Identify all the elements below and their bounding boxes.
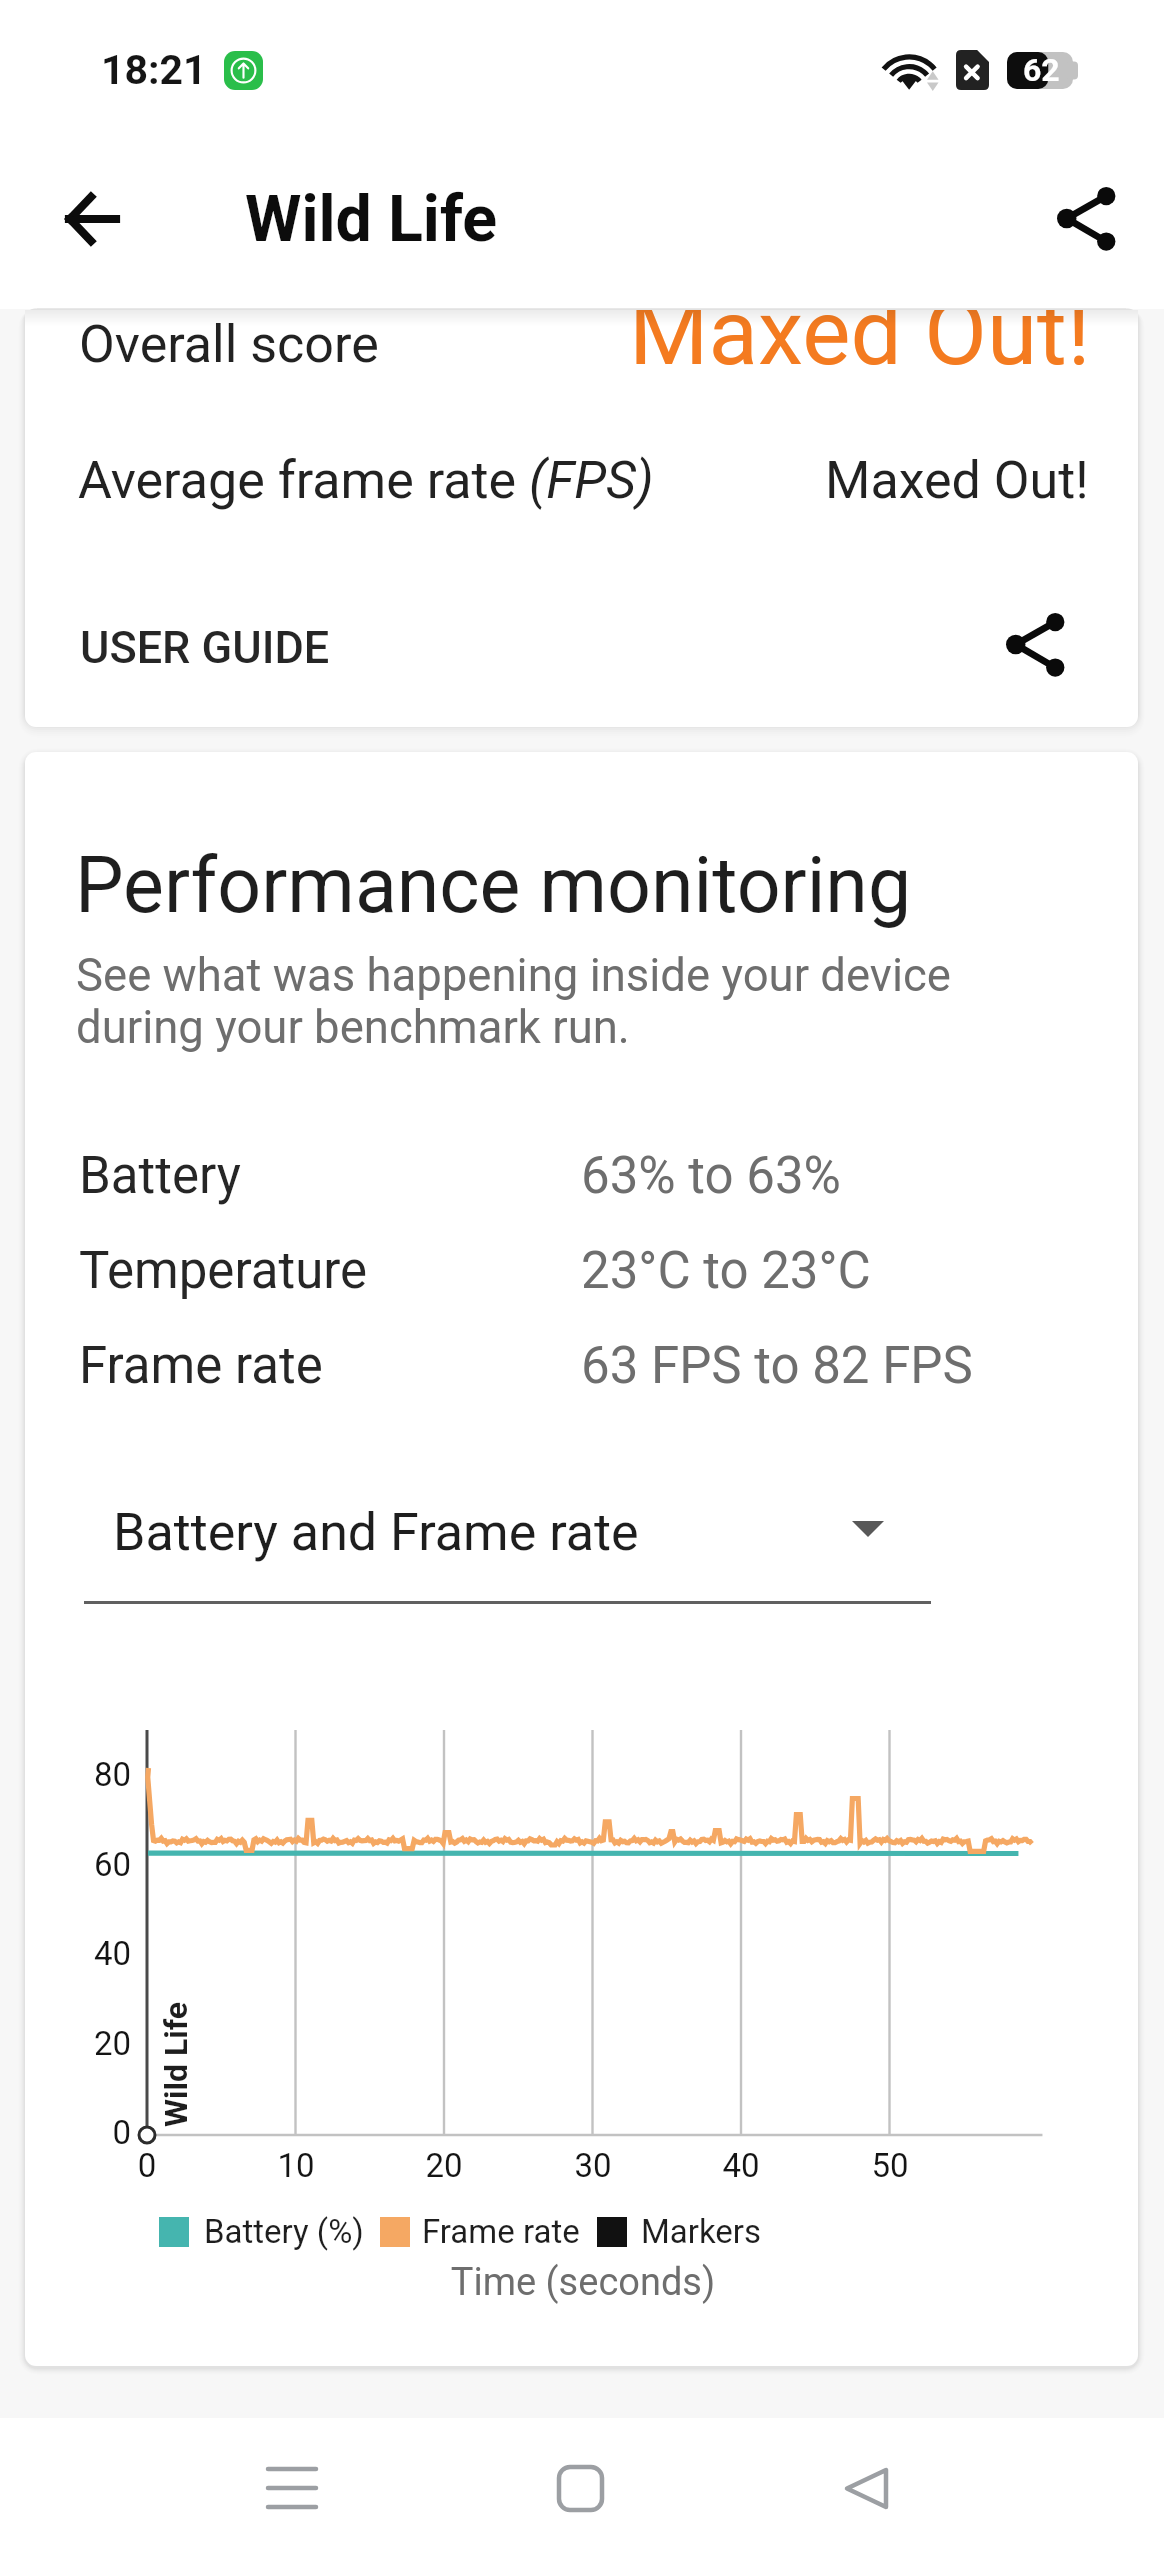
- button[interactable]: Share result: [983, 590, 1088, 695]
- staticText: Battery: [79, 1146, 241, 1206]
- staticText: Battery and Frame rate: [113, 1502, 639, 1563]
- staticText: 18:21: [101, 46, 207, 94]
- staticText: 80: [27, 1755, 131, 1794]
- button[interactable]: USER GUIDE: [45, 592, 335, 702]
- staticText: 10: [236, 2146, 356, 2185]
- staticText: 63% to 63%: [581, 1146, 841, 1206]
- staticText: 0: [27, 2113, 131, 2152]
- staticText: Frame rate: [79, 1336, 323, 1396]
- button[interactable]: Home: [525, 2433, 635, 2543]
- staticText: 60: [27, 1845, 131, 1884]
- staticText: USER GUIDE: [80, 621, 330, 674]
- staticText: Wild Life: [245, 181, 498, 257]
- staticText: Temperature: [79, 1241, 368, 1301]
- staticText: Frame rate: [422, 2212, 580, 2251]
- staticText: Time (seconds): [383, 2260, 783, 2305]
- staticText: 23°C to 23°C: [581, 1241, 871, 1301]
- staticText: Battery (%): [204, 2212, 364, 2251]
- staticText: Maxed Out!: [825, 450, 1089, 511]
- staticText: See what was happening inside your devic…: [76, 949, 951, 1054]
- staticText: 40: [681, 2146, 801, 2185]
- button[interactable]: Share: [1026, 162, 1126, 262]
- button[interactable]: Back: [811, 2433, 921, 2543]
- staticText: 20: [384, 2146, 504, 2185]
- staticText: 50: [830, 2146, 950, 2185]
- staticText: 63 FPS to 82 FPS: [581, 1336, 973, 1396]
- button[interactable]: Back: [40, 159, 140, 259]
- staticText: Markers: [641, 2212, 762, 2251]
- staticText: Average frame rate (FPS): [78, 450, 654, 511]
- staticText: Maxed Out!: [629, 310, 1091, 387]
- staticText: 40: [27, 1934, 131, 1973]
- staticText: Performance monitoring: [75, 841, 912, 931]
- staticText: Overall score: [79, 314, 379, 375]
- staticText: 62: [1023, 51, 1060, 88]
- staticText: 20: [27, 2024, 131, 2063]
- staticText: Wild Life: [157, 2001, 195, 2127]
- button[interactable]: Recent apps: [237, 2433, 347, 2543]
- staticText: 30: [533, 2146, 653, 2185]
- button[interactable]: Battery and Frame rate: [84, 1477, 931, 1604]
- staticText: 0: [87, 2146, 207, 2185]
